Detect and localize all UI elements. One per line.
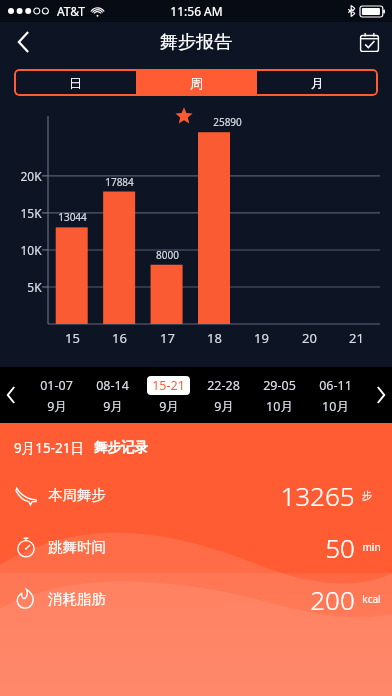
staticText: 9月 bbox=[214, 398, 234, 415]
staticText: 21 bbox=[349, 329, 364, 347]
staticText: 13044 bbox=[58, 210, 87, 224]
button[interactable]: Previous bbox=[0, 367, 22, 423]
staticText: 10月 bbox=[322, 398, 349, 415]
staticText: 10月 bbox=[266, 398, 293, 415]
button[interactable]: Next bbox=[370, 367, 392, 423]
staticText: 22-28 bbox=[207, 377, 240, 394]
staticText: 06-11 bbox=[319, 377, 352, 394]
staticText: 步 bbox=[362, 489, 372, 502]
staticText: 9月 bbox=[159, 398, 179, 415]
staticText: 20K bbox=[20, 168, 42, 184]
staticText: 15 bbox=[65, 329, 80, 347]
staticText: 8000 bbox=[156, 248, 179, 262]
staticText: 5K bbox=[27, 279, 42, 295]
staticText: 11:56 AM bbox=[170, 3, 223, 19]
button[interactable]: 22-28 bbox=[202, 376, 245, 415]
staticText: AT&T bbox=[57, 3, 85, 19]
staticText: 08-14 bbox=[96, 377, 129, 394]
staticText: 本周舞步 bbox=[48, 486, 106, 504]
button[interactable]: 01-07 bbox=[35, 376, 78, 415]
button[interactable]: 日 bbox=[14, 69, 136, 96]
button[interactable]: 15-21 bbox=[147, 376, 190, 415]
button[interactable]: 消耗脂肪 bbox=[0, 582, 392, 616]
staticText: 日 bbox=[69, 75, 82, 91]
staticText: 19 bbox=[254, 329, 269, 347]
staticText: 周 bbox=[190, 75, 203, 91]
staticText: 9月 bbox=[47, 398, 67, 415]
button[interactable]: 06-11 bbox=[314, 376, 357, 415]
button[interactable]: 08-14 bbox=[91, 376, 134, 415]
staticText: 17 bbox=[160, 329, 175, 347]
button[interactable]: 周 bbox=[136, 69, 257, 96]
staticText: 9月 bbox=[103, 398, 123, 415]
staticText: 20 bbox=[302, 329, 317, 347]
staticText: 50 bbox=[325, 530, 355, 564]
staticText: 29-05 bbox=[263, 377, 296, 394]
staticText: 16 bbox=[112, 329, 127, 347]
staticText: 15K bbox=[20, 205, 42, 221]
button[interactable]: 29-05 bbox=[258, 376, 301, 415]
button[interactable]: Back bbox=[0, 22, 46, 62]
staticText: 跳舞时间 bbox=[48, 538, 106, 556]
staticText: 25890 bbox=[213, 115, 242, 129]
staticText: 17884 bbox=[105, 175, 134, 189]
button[interactable]: 月 bbox=[257, 69, 378, 96]
staticText: 月 bbox=[311, 75, 324, 91]
staticText: 13265 bbox=[280, 478, 355, 512]
staticText: 15-21 bbox=[152, 377, 185, 394]
staticText: 10K bbox=[20, 242, 42, 258]
button[interactable]: 跳舞时间 bbox=[0, 530, 392, 564]
button[interactable]: 本周舞步 bbox=[0, 478, 392, 512]
staticText: 200 bbox=[310, 582, 355, 616]
staticText: 舞步报告 bbox=[160, 31, 232, 54]
staticText: 01-07 bbox=[40, 377, 73, 394]
staticText: 9月15-21日 bbox=[14, 439, 84, 457]
staticText: 舞步记录 bbox=[94, 439, 148, 456]
button[interactable]: Calendar bbox=[346, 22, 392, 62]
staticText: kcal bbox=[362, 592, 381, 606]
staticText: 18 bbox=[207, 329, 222, 347]
staticText: 消耗脂肪 bbox=[48, 590, 106, 608]
staticText: min bbox=[362, 540, 381, 554]
